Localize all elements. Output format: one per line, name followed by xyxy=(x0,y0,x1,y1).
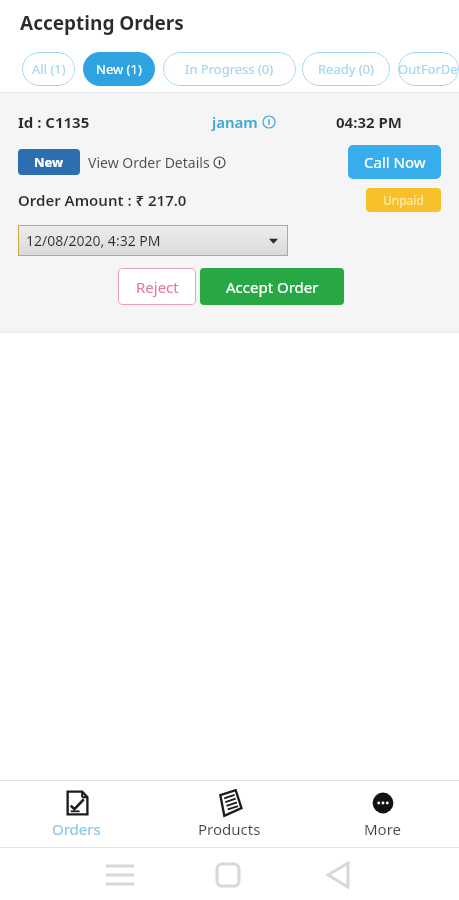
staticText: Accepting Orders xyxy=(20,10,184,36)
staticText: 04:32 PM xyxy=(336,112,402,132)
staticText: Accept Order xyxy=(226,277,319,297)
staticText: Id : C1135 xyxy=(18,112,90,132)
button[interactable]: janam xyxy=(212,112,275,132)
other: Products xyxy=(217,790,243,816)
other: Orders xyxy=(64,790,90,816)
staticText: Order Amount : ₹ 217.0 xyxy=(18,190,187,210)
button[interactable]: New (1) xyxy=(83,52,155,86)
button[interactable]: In Progress (0) xyxy=(163,52,296,86)
staticText: In Progress (0) xyxy=(185,60,274,78)
staticText: Products xyxy=(198,819,261,839)
staticText: New (1) xyxy=(96,60,142,78)
staticText: Unpaid xyxy=(383,192,424,208)
button[interactable]: Products xyxy=(153,781,306,847)
staticText: 12/08/2020, 4:32 PM xyxy=(26,231,161,250)
button[interactable]: Accept Order xyxy=(200,268,344,305)
staticText: More xyxy=(364,819,402,839)
staticText: Ready (0) xyxy=(318,60,374,78)
button[interactable]: 12/08/2020, 4:32 PM xyxy=(18,225,288,256)
staticText: All (1) xyxy=(32,60,66,78)
other: More xyxy=(370,790,396,816)
button[interactable]: OutForDelivery (0) xyxy=(398,52,459,86)
staticText: Orders xyxy=(52,819,101,839)
button[interactable]: New xyxy=(18,149,80,175)
staticText: janam xyxy=(212,112,258,132)
button[interactable]: Orders xyxy=(0,781,153,847)
button[interactable]: More xyxy=(306,781,459,847)
staticText: Reject xyxy=(136,277,179,297)
staticText: New xyxy=(34,153,64,171)
staticText: OutForDelivery (0) xyxy=(398,60,459,78)
button[interactable]: View Order Details xyxy=(88,153,225,172)
staticText: View Order Details xyxy=(88,153,210,172)
staticText: Call Now xyxy=(364,152,426,172)
button[interactable]: Reject xyxy=(118,268,196,305)
button[interactable]: Call Now xyxy=(348,145,441,179)
button[interactable]: All (1) xyxy=(22,52,75,86)
button[interactable]: Unpaid xyxy=(366,188,441,212)
button[interactable]: Ready (0) xyxy=(302,52,390,86)
